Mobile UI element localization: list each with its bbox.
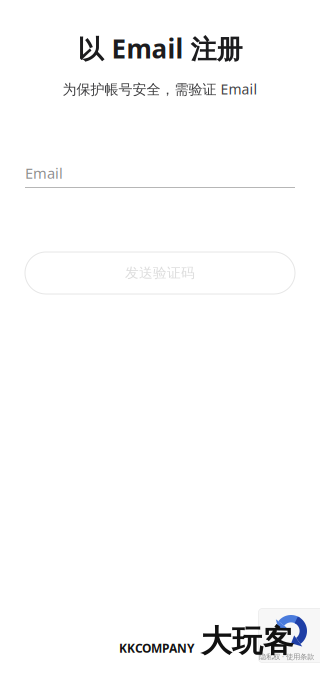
staticText: 大玩客 (201, 622, 294, 661)
staticText: 为保护帳号安全，需验证 Email (62, 79, 257, 99)
staticText: KKCOMPANY (119, 640, 195, 656)
staticText: 以 Email 注册 (77, 31, 242, 66)
staticText: 隐私权 · 使用条款 (259, 651, 314, 661)
staticText: 发送验证码 (125, 264, 195, 282)
staticText: Email (25, 163, 63, 183)
button[interactable]: 发送验证码 (25, 252, 295, 294)
